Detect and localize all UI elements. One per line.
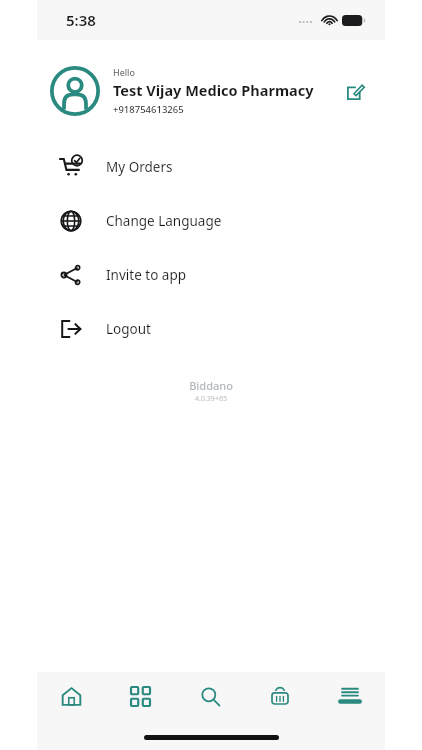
button[interactable]: Edit profile <box>338 74 372 108</box>
button[interactable]: Change Language <box>37 194 385 248</box>
staticText: Test Vijay Medico Pharmacy <box>113 80 314 100</box>
staticText: Change Language <box>106 212 222 230</box>
button[interactable]: Categories <box>106 672 175 720</box>
button[interactable]: Logout <box>37 302 385 356</box>
button[interactable]: Search <box>175 672 245 720</box>
button[interactable]: Home <box>37 672 106 720</box>
button[interactable]: Menu <box>315 672 385 720</box>
staticText: Invite to app <box>106 266 186 284</box>
staticText: 5:38 <box>66 10 96 30</box>
staticText: Logout <box>106 320 151 338</box>
staticText: Biddano <box>189 378 233 393</box>
button[interactable]: Hello <box>37 64 385 118</box>
button[interactable]: Invite to app <box>37 248 385 302</box>
button[interactable]: My Orders <box>37 140 385 194</box>
button[interactable]: Cart <box>245 672 315 720</box>
staticText: 4.0.39+65 <box>195 394 227 404</box>
staticText: +918754613265 <box>113 103 184 116</box>
staticText: Hello <box>113 66 135 78</box>
staticText: My Orders <box>106 158 173 176</box>
